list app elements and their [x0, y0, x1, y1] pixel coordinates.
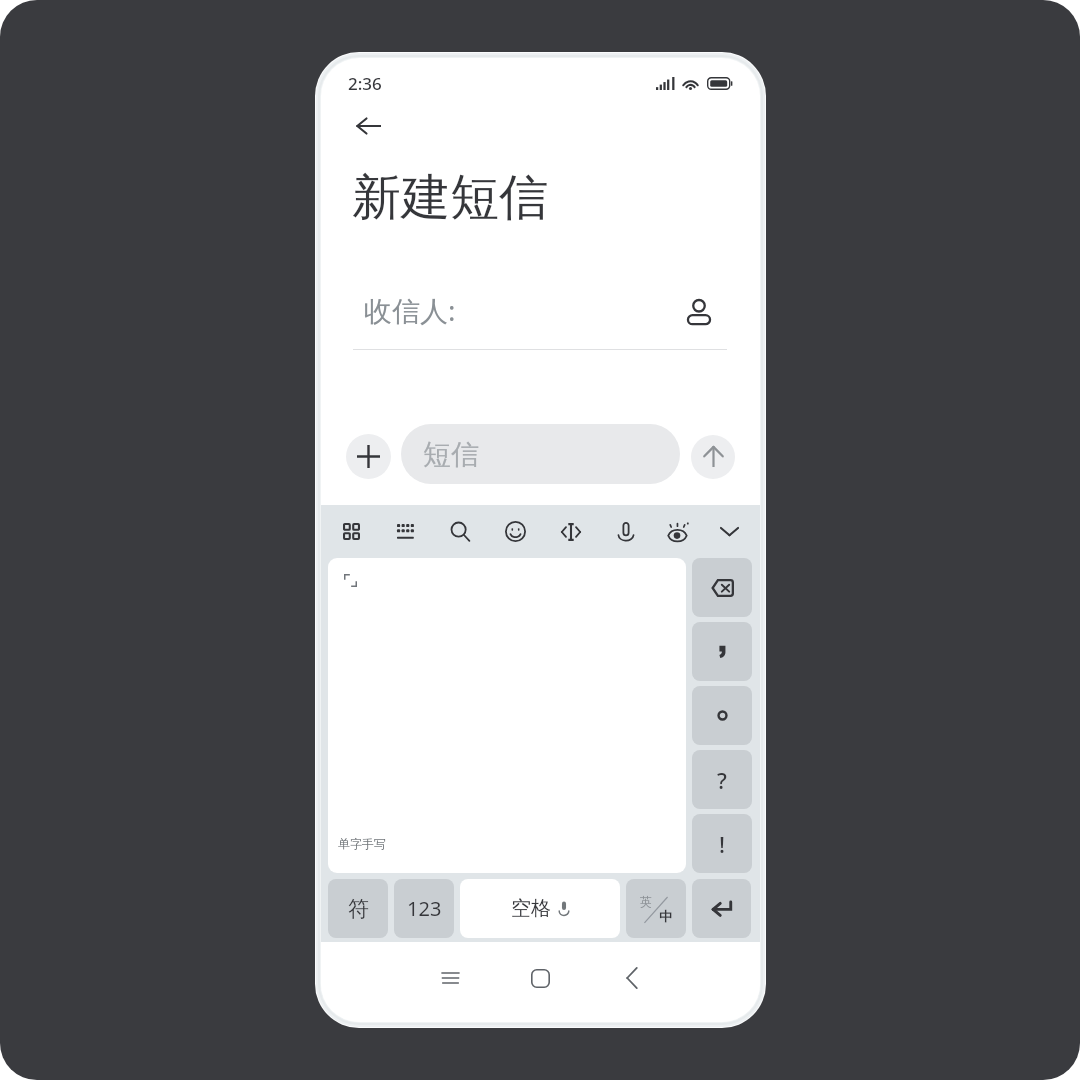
button[interactable]: Voice input [598, 505, 653, 558]
button[interactable]: Question mark [692, 750, 752, 809]
button[interactable]: Home [518, 956, 562, 1000]
staticText: 收信人: [364, 291, 456, 329]
button[interactable]: Numbers [394, 879, 454, 938]
button[interactable]: Period [692, 686, 752, 745]
button[interactable]: Backspace [692, 558, 752, 617]
button[interactable]: Back [610, 956, 654, 1000]
button[interactable]: Switch language [626, 879, 686, 938]
button[interactable]: Search [433, 505, 488, 558]
button[interactable]: Choose contact [677, 290, 721, 334]
button[interactable]: Theme [653, 505, 708, 558]
staticText: 空格 [511, 896, 551, 921]
staticText: 123 [407, 895, 442, 922]
staticText: 中 [659, 908, 672, 924]
staticText: 2:36 [348, 72, 382, 95]
button[interactable]: Comma [692, 622, 752, 681]
button[interactable]: Handwriting area [328, 558, 686, 873]
staticText: 新建短信 [352, 167, 548, 229]
button[interactable]: 短信 [401, 424, 680, 484]
staticText: ? [717, 765, 727, 795]
staticText: 英 [640, 894, 652, 909]
button[interactable]: Emoji [488, 505, 543, 558]
button[interactable]: Text selection [543, 505, 598, 558]
button[interactable]: Send [691, 435, 735, 479]
button[interactable]: Back [346, 104, 390, 148]
button[interactable]: Keyboard layout [378, 505, 433, 558]
button[interactable]: Recent apps [428, 956, 472, 1000]
button[interactable]: Add attachment [346, 434, 391, 479]
button[interactable]: Enter [692, 879, 751, 938]
button[interactable]: Apps [324, 505, 378, 558]
button[interactable]: Exclamation mark [692, 814, 752, 873]
button[interactable]: Hide keyboard [708, 505, 760, 558]
button[interactable]: Symbols [328, 879, 388, 938]
staticText: 单字手写 [338, 836, 386, 851]
staticText: 符 [348, 896, 369, 922]
staticText: 短信 [423, 437, 479, 472]
staticText: ! [719, 829, 726, 859]
button[interactable]: Space [460, 879, 620, 938]
